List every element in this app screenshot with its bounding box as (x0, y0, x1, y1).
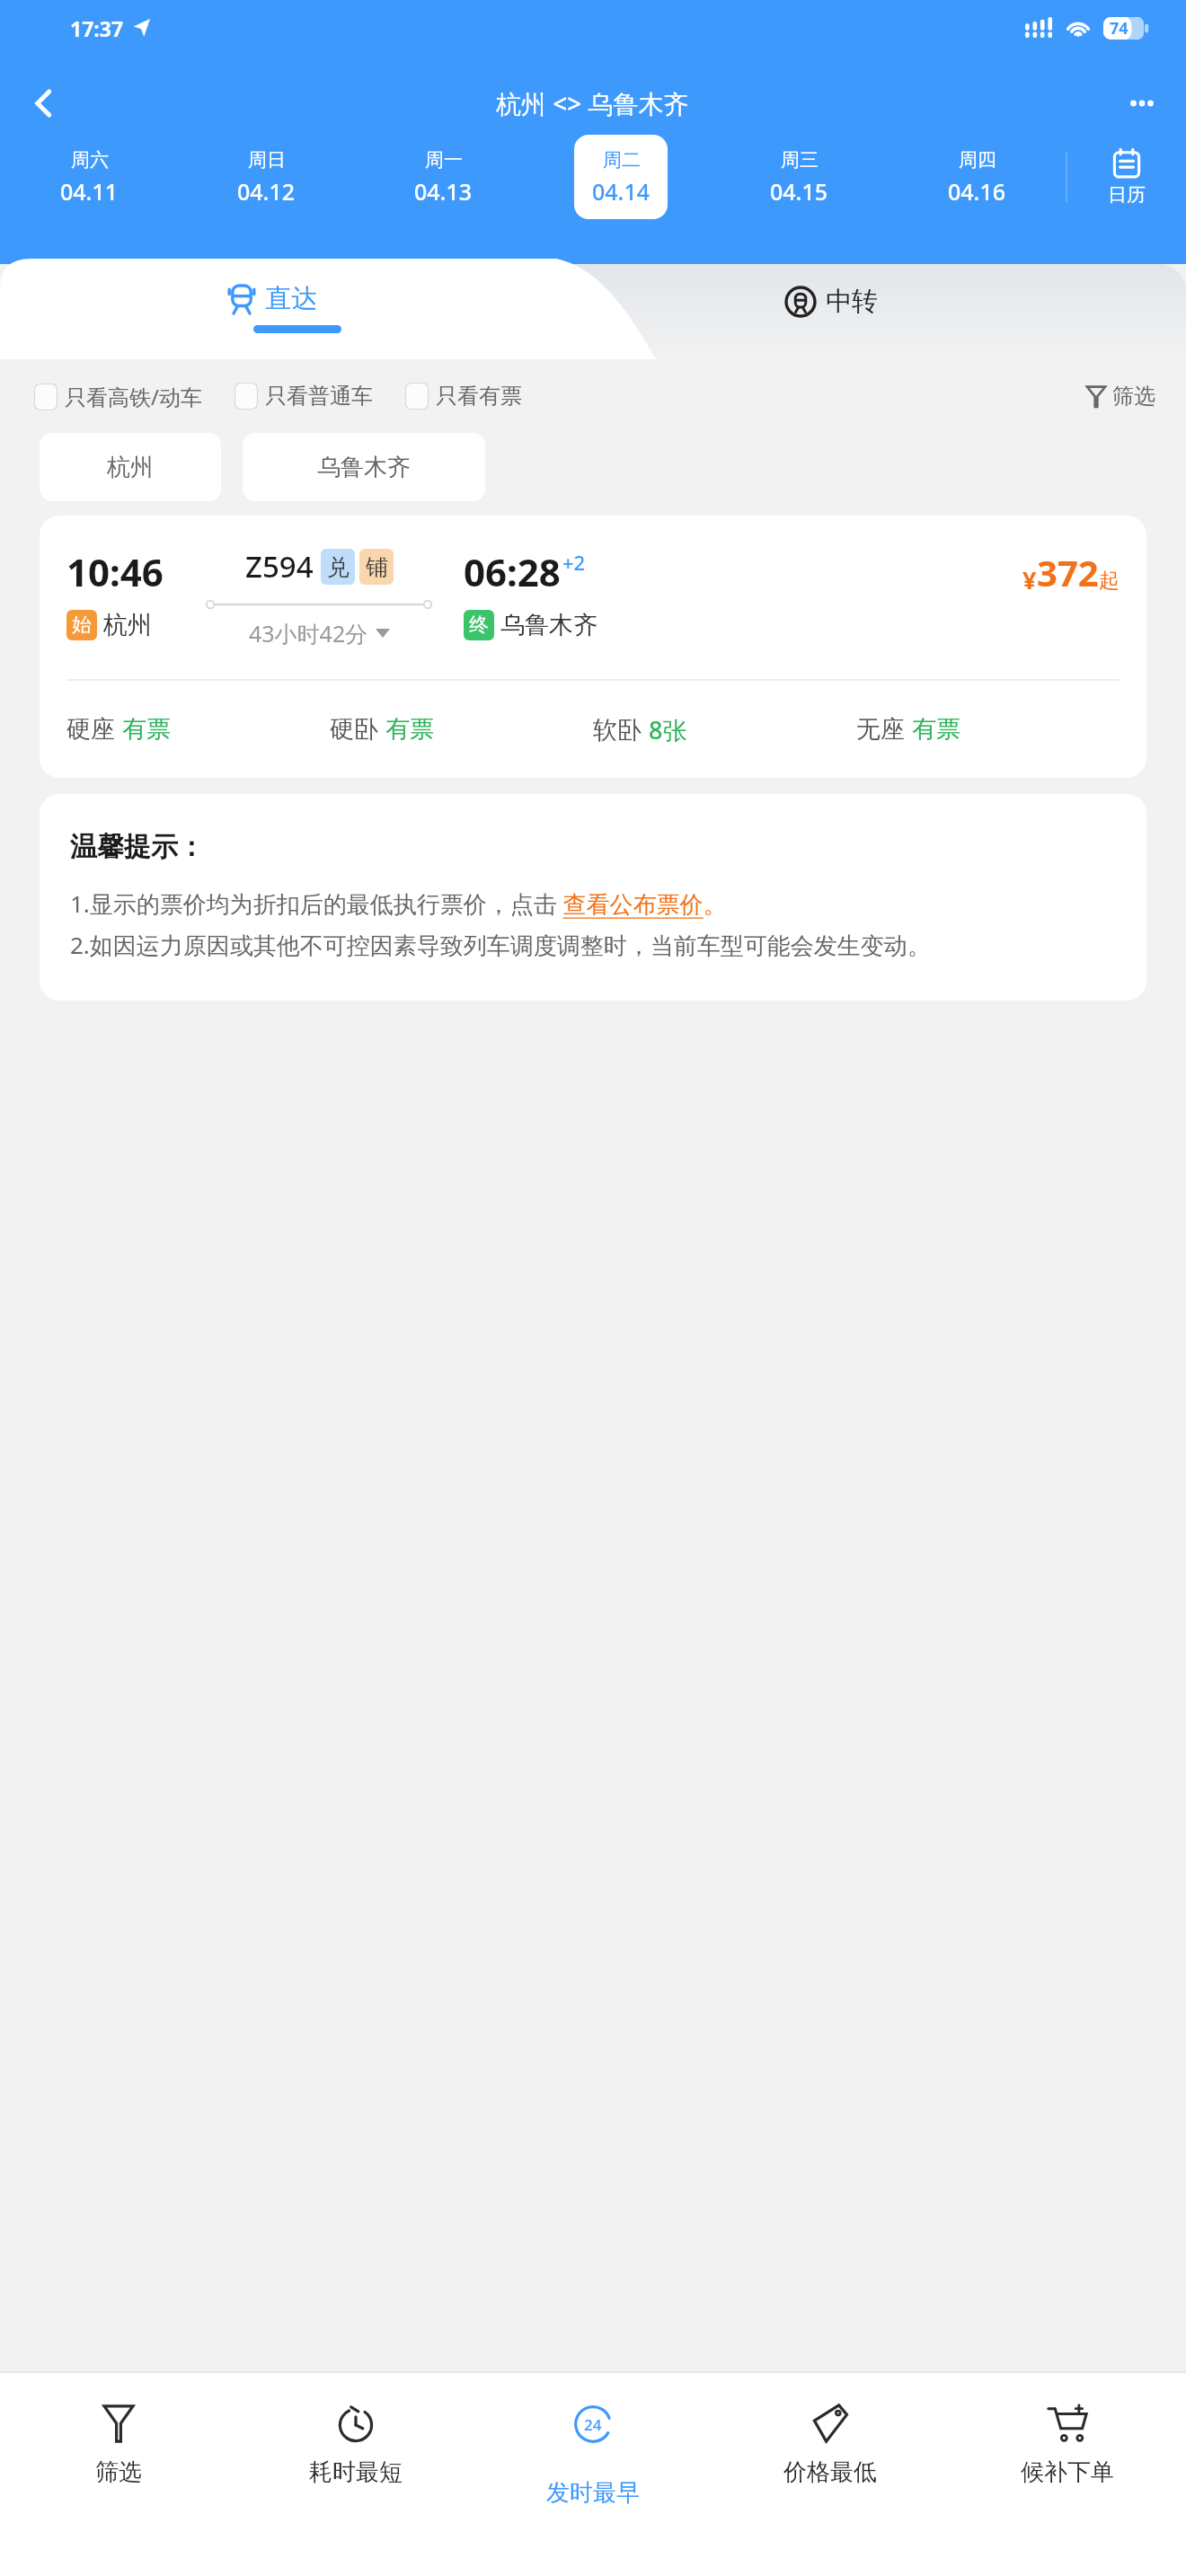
staticText: 乌鲁木齐 (317, 453, 411, 482)
staticText: 有票 (912, 714, 960, 745)
button[interactable]: 价格最低 (712, 2373, 949, 2576)
staticText: 24 (584, 2414, 602, 2435)
button[interactable]: 筛选 (0, 2373, 237, 2576)
staticText: 只看高铁/动车 (65, 382, 202, 411)
staticText: 筛选 (95, 2457, 142, 2487)
button[interactable]: 耗时最短 (237, 2373, 474, 2576)
staticText: 有票 (122, 714, 171, 745)
staticText: 日历 (1108, 183, 1146, 207)
staticText: 直达 (265, 282, 317, 315)
staticText: 周三 (781, 148, 819, 172)
staticText: 372 (1037, 548, 1099, 596)
staticText: 2.如因运力原因或其他不可控因素导致列车调度调整时，当前车型可能会发生变动。 (70, 929, 931, 961)
staticText: 04.16 (948, 176, 1006, 207)
staticText: 周二 (603, 148, 641, 172)
staticText: 硬座 (66, 714, 115, 745)
staticText: 终 (469, 613, 489, 638)
button[interactable]: 周二 (574, 135, 668, 219)
staticText: Z594 (245, 546, 314, 587)
staticText: 04.15 (770, 176, 828, 207)
staticText: 起 (1099, 568, 1120, 594)
staticText: 软卧 (593, 715, 642, 745)
staticText: 杭州 <> 乌鲁木齐 (496, 86, 689, 120)
staticText: 杭州 (107, 453, 154, 482)
button[interactable]: 周日 (219, 135, 313, 219)
staticText: 耗时最短 (309, 2457, 403, 2487)
staticText: 周日 (248, 148, 286, 172)
button[interactable]: 日历 (1067, 135, 1186, 219)
staticText: 乌鲁木齐 (500, 610, 597, 640)
button[interactable] (0, 219, 1186, 359)
button[interactable]: 候补下单 (949, 2373, 1186, 2576)
staticText: 43小时42分 (249, 618, 368, 648)
staticText: 10:46 (66, 546, 164, 597)
button[interactable]: 只看有票 (405, 383, 522, 410)
button[interactable]: 只看普通车 (235, 383, 373, 410)
staticText: 铺 (366, 553, 388, 581)
staticText: 周一 (425, 148, 463, 172)
staticText: 只看有票 (436, 383, 522, 410)
button[interactable]: 周四 (930, 135, 1023, 219)
staticText: 有票 (385, 714, 434, 745)
button[interactable]: 10:46 (40, 516, 1146, 778)
staticText: 始 (72, 613, 92, 638)
staticText: 无座 (856, 714, 905, 745)
button[interactable]: 中转 (548, 264, 1186, 359)
staticText: 04.11 (60, 176, 119, 207)
staticText: 只看普通车 (265, 383, 373, 410)
staticText: 价格最低 (783, 2457, 877, 2487)
staticText: 兑 (327, 553, 350, 581)
button[interactable]: 周一 (396, 135, 490, 219)
staticText: 1.显示的票价均为折扣后的最低执行票价，点击 查看公布票价。 (70, 887, 727, 920)
button[interactable]: 周六 (42, 135, 136, 219)
staticText: 杭州 (103, 610, 152, 640)
staticText: 温馨提示： (70, 830, 205, 864)
staticText: 硬卧 (330, 714, 378, 745)
button[interactable]: 杭州 (40, 433, 221, 501)
staticText: ¥ (1022, 563, 1037, 596)
staticText: 04.12 (237, 176, 296, 207)
button[interactable]: 乌鲁木齐 (243, 433, 485, 501)
staticText: +2 (562, 549, 586, 576)
staticText: 17:37 (70, 14, 124, 42)
staticText: 中转 (826, 285, 878, 318)
staticText: 04.14 (592, 176, 651, 207)
staticText: 筛选 (1112, 383, 1155, 410)
staticText: 周四 (959, 148, 996, 172)
staticText: 74 (1110, 17, 1128, 40)
staticText: 周六 (71, 148, 109, 172)
staticText: 候补下单 (1021, 2457, 1114, 2487)
staticText: 8张 (649, 713, 687, 746)
button[interactable]: 筛选 (1086, 383, 1155, 410)
staticText: 04.13 (414, 176, 473, 207)
button[interactable]: Back (20, 79, 68, 128)
button[interactable]: 只看高铁/动车 (34, 382, 202, 411)
button[interactable]: 周三 (752, 135, 845, 219)
button[interactable]: More options (1118, 79, 1166, 128)
staticText: 06:28 (464, 546, 561, 597)
staticText: 发时最早 (546, 2478, 640, 2508)
button[interactable]: 24 (474, 2373, 712, 2576)
